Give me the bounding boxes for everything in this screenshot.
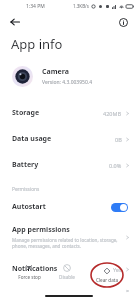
button[interactable]: Disable [52,262,82,282]
staticText: Yes [113,266,122,273]
staticText: Autostart [12,202,111,212]
button[interactable]: Restrict data usage [0,282,138,300]
staticText: Storage [12,108,103,118]
staticText: Battery [12,160,109,170]
staticText: App info [11,35,63,53]
staticText: 0B [115,136,122,143]
button[interactable]: Data usage [0,126,138,152]
staticText: Camera [42,67,69,77]
staticText: Notifications [12,264,113,274]
staticText: App permissions [12,225,70,235]
staticText: Data usage [12,134,115,144]
button[interactable]: Force stop [14,262,44,282]
staticText: Force stop [18,274,41,280]
staticText: 0.0% [109,162,122,169]
button[interactable]: Camera [0,66,138,87]
button[interactable]: Autostart [0,196,138,218]
staticText: 1:34 PM [26,3,45,10]
staticText: Disable [59,274,75,280]
staticText: Clear data [96,277,118,283]
staticText: 420MB [103,110,122,117]
button[interactable]: Info [114,13,132,31]
staticText: Version: 4.3.003950.4 [42,79,92,86]
staticText: Permissions [12,186,40,193]
button[interactable]: Notifications [0,256,138,282]
button[interactable]: App permissions [0,218,138,256]
button[interactable]: Back [6,13,24,31]
button[interactable]: Storage [0,100,138,126]
staticText: 1.3KB/s [73,3,89,9]
staticText: Manage permissions related to location, … [12,237,118,249]
button[interactable]: Clear data [92,265,122,285]
button[interactable]: Battery [0,152,138,178]
